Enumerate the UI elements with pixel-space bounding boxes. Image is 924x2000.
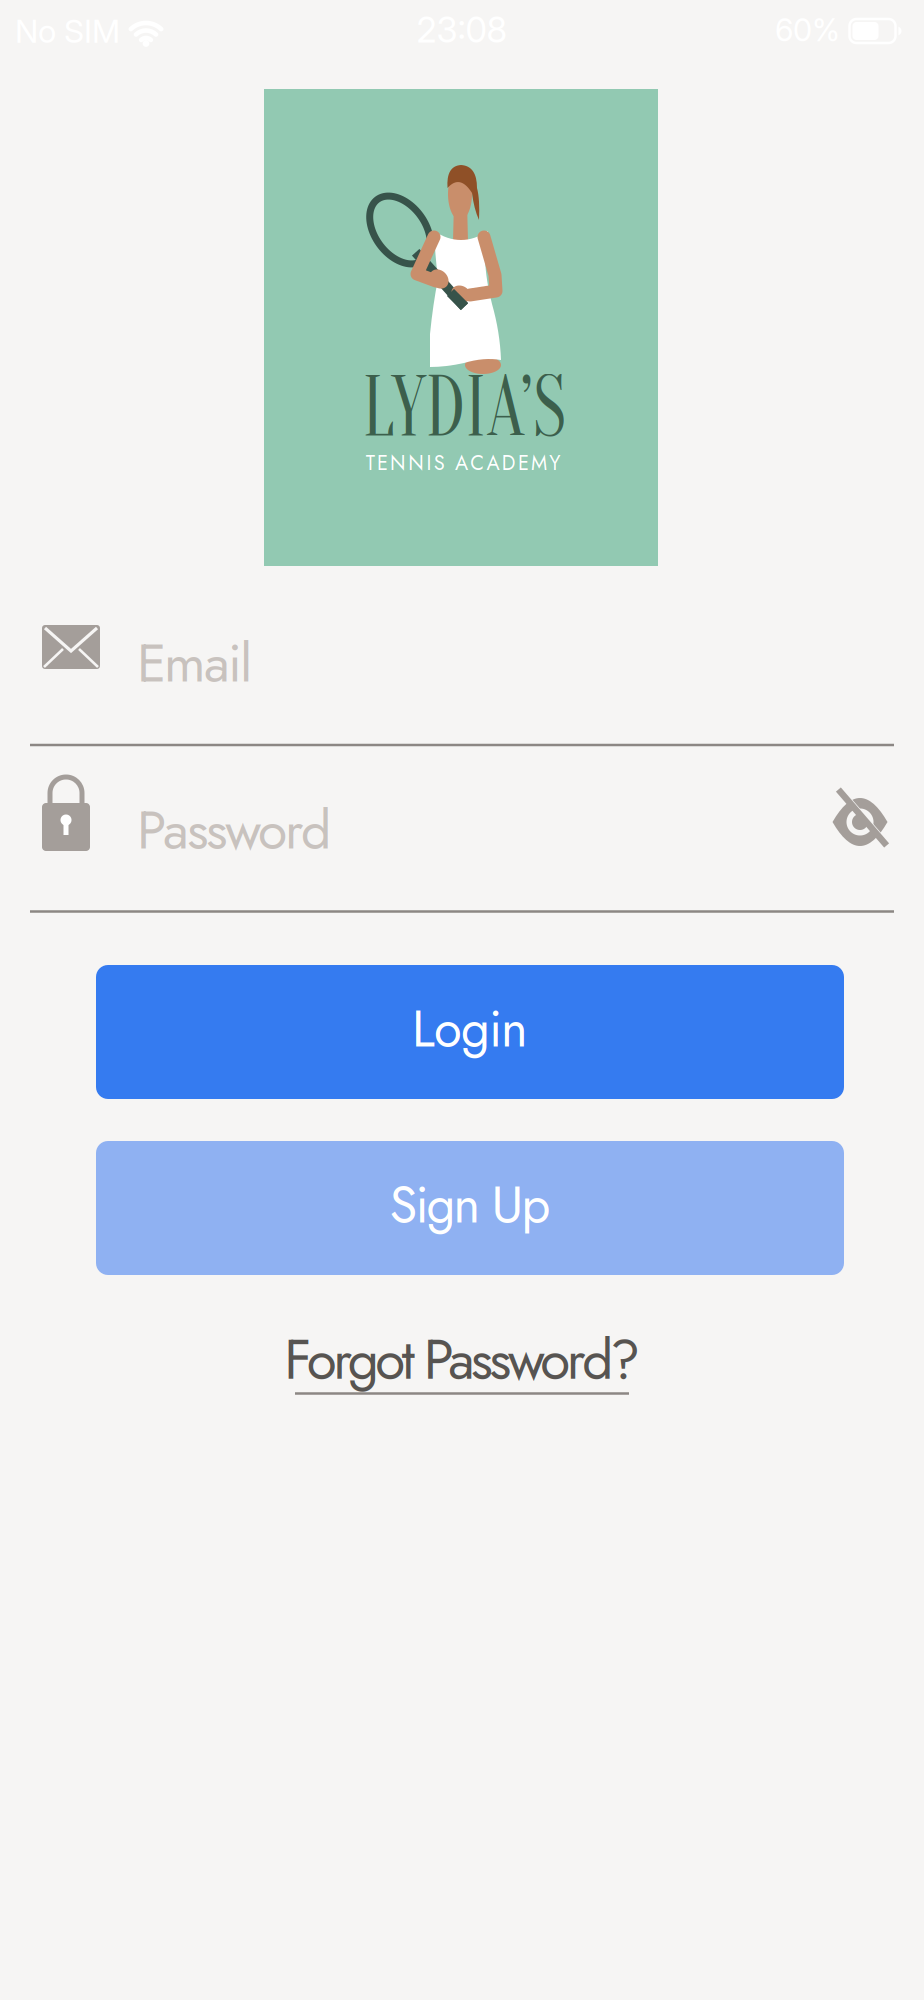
staticText: No SIM (15, 12, 120, 50)
staticText: Login (412, 992, 528, 1066)
staticText: Y (549, 448, 560, 477)
staticText: T (366, 448, 375, 477)
button[interactable]: Show password (832, 796, 887, 848)
button[interactable]: Sign Up (96, 1141, 844, 1275)
button[interactable]: Login (96, 965, 844, 1099)
staticText: LYDIA’S (337, 358, 591, 458)
staticText: D (502, 448, 516, 477)
staticText: E (518, 448, 529, 477)
staticText: N (408, 448, 424, 477)
staticText: E (377, 448, 388, 477)
staticText: A (455, 448, 468, 477)
staticText: Forgot Password? (284, 1320, 640, 1399)
staticText: 60% (775, 11, 840, 48)
staticText: Password (137, 791, 331, 869)
staticText: C (470, 448, 484, 477)
staticText: N (390, 448, 406, 477)
staticText: 23:08 (416, 9, 507, 51)
staticText: Email (137, 624, 252, 702)
staticText: A (486, 448, 499, 477)
staticText: Sign Up (389, 1168, 550, 1242)
staticText: M (531, 448, 547, 477)
button[interactable]: Forgot Password? (284, 1320, 640, 1402)
staticText: I (426, 448, 431, 477)
staticText: S (434, 448, 445, 477)
